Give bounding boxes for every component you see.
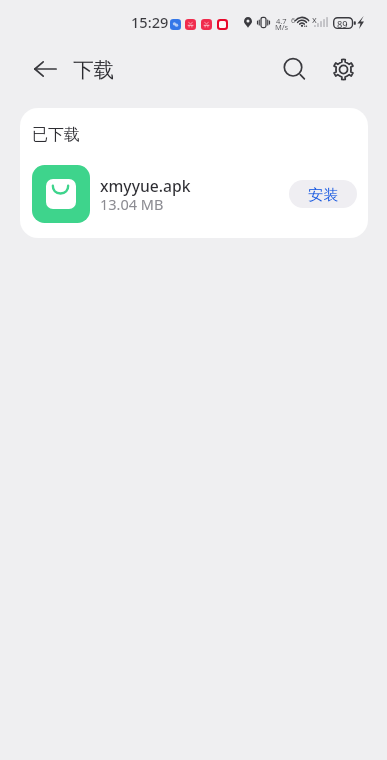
button[interactable]: 安装 [289, 180, 357, 208]
button[interactable]: xmyyue.apk [20, 155, 368, 233]
button[interactable]: Search [274, 49, 314, 89]
staticText: 6 [291, 15, 296, 25]
staticText: xmyyue.apk [100, 175, 191, 196]
staticText: 安装 [308, 185, 339, 204]
staticText: 下载 [73, 57, 115, 83]
button[interactable]: Settings [323, 49, 363, 89]
staticText: 89 [337, 18, 348, 30]
staticText: 15:29 [131, 12, 169, 32]
staticText: 13.04 MB [100, 194, 164, 214]
staticText: x [312, 13, 317, 25]
staticText: 4.7 [276, 16, 287, 26]
button[interactable]: Back [28, 52, 62, 86]
staticText: 已下载 [32, 125, 80, 145]
staticText: M/s [275, 22, 289, 32]
